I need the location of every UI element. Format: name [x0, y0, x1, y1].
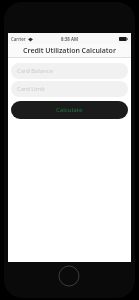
- staticText: Card Limit: [17, 85, 45, 93]
- staticText: Credit Utilization Calculator: [23, 46, 116, 56]
- staticText: Calculate: [56, 106, 83, 114]
- button[interactable]: Card Balance: [11, 63, 128, 79]
- button[interactable]: Calculate: [11, 101, 128, 119]
- staticText: 8:38 AM: [61, 36, 78, 42]
- button[interactable]: Card Limit: [11, 81, 128, 97]
- staticText: Carrier: [11, 36, 26, 42]
- staticText: Card Balance: [17, 67, 53, 75]
- button[interactable]: Home: [58, 265, 80, 287]
